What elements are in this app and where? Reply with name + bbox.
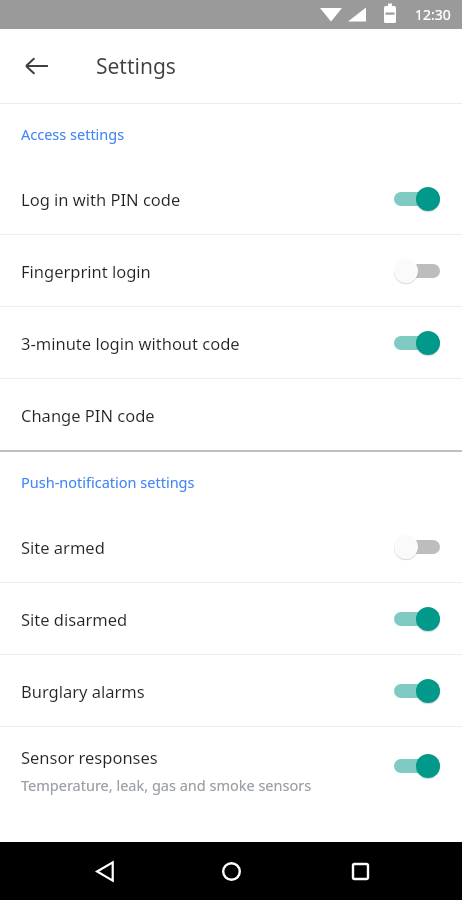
staticText: Fingerprint login <box>21 260 151 282</box>
staticText: Log in with PIN code <box>21 188 181 210</box>
button[interactable]: Recent apps <box>336 847 384 895</box>
staticText: Settings <box>96 52 176 81</box>
button[interactable]: Home <box>207 847 255 895</box>
button[interactable]: 3-minute login without code <box>0 307 462 378</box>
staticText: Temperature, leak, gas and smoke sensors <box>21 775 312 795</box>
staticText: Site armed <box>21 536 105 558</box>
button[interactable]: Fingerprint login off <box>393 254 441 288</box>
staticText: 3-minute login without code <box>21 332 240 354</box>
button[interactable]: Site armed off <box>393 530 441 564</box>
staticText: Site disarmed <box>21 608 128 630</box>
button[interactable]: Site disarmed on <box>393 602 441 636</box>
button[interactable]: Back <box>81 847 129 895</box>
button[interactable]: Burglary alarms <box>0 655 462 726</box>
button[interactable]: Back <box>13 42 61 90</box>
staticText: 12:30 <box>415 5 451 24</box>
staticText: Access settings <box>21 124 125 144</box>
button[interactable]: Site armed <box>0 511 462 582</box>
staticText: Change PIN code <box>21 404 155 426</box>
button[interactable]: Log in with PIN code <box>0 163 462 234</box>
staticText: Push-notification settings <box>21 472 195 492</box>
button[interactable]: Burglary alarms on <box>393 674 441 708</box>
staticText: Burglary alarms <box>21 680 145 702</box>
button[interactable]: Log in with PIN code on <box>393 182 441 216</box>
button[interactable]: Sensor responses on <box>393 749 441 783</box>
button[interactable]: 3-minute login without code on <box>393 326 441 360</box>
button[interactable]: Fingerprint login <box>0 235 462 306</box>
button[interactable]: Site disarmed <box>0 583 462 654</box>
staticText: Sensor responses <box>21 746 158 768</box>
button[interactable]: Sensor responses <box>0 727 462 823</box>
button[interactable]: Change PIN code <box>0 379 462 450</box>
